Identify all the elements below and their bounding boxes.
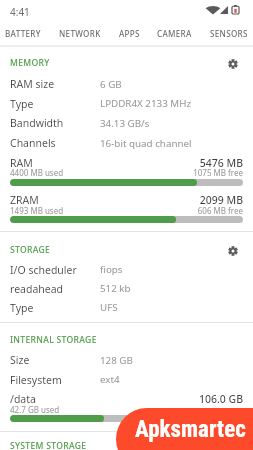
staticText: NETWORK xyxy=(59,28,101,39)
staticText: /data xyxy=(10,392,36,406)
button[interactable] xyxy=(0,350,253,369)
button[interactable]: SENSORS xyxy=(208,23,250,43)
staticText: readahead xyxy=(10,282,64,296)
staticText: 34.13 GB/s xyxy=(100,117,150,130)
staticText: Filesystem xyxy=(10,373,62,387)
button[interactable] xyxy=(0,113,253,132)
button[interactable] xyxy=(0,298,253,317)
staticText: 6 GB xyxy=(100,78,122,91)
staticText: Size xyxy=(10,353,30,367)
staticText: RAM xyxy=(10,156,33,170)
staticText: 1493 MB used xyxy=(10,205,64,216)
staticText: Apksmartec xyxy=(135,416,246,443)
button[interactable]: Settings xyxy=(224,55,242,73)
staticText: LPDDR4X 2133 MHz xyxy=(100,97,192,110)
button[interactable]: Apksmartec xyxy=(116,408,253,450)
staticText: APPS xyxy=(119,28,140,39)
staticText: Type xyxy=(10,301,34,315)
staticText: Channels xyxy=(10,136,56,150)
staticText: 16-bit quad channel xyxy=(100,137,192,150)
button[interactable]: APPS xyxy=(117,23,142,43)
staticText: MEMORY xyxy=(10,57,50,69)
staticText: BATTERY xyxy=(5,28,41,39)
staticText: SYSTEM STORAGE xyxy=(10,440,87,450)
button[interactable]: BATTERY xyxy=(3,23,43,43)
staticText: I/O scheduler xyxy=(10,263,77,277)
button[interactable]: CAMERA xyxy=(155,23,194,43)
staticText: 5476 MB xyxy=(199,156,243,170)
staticText: fiops xyxy=(100,263,123,276)
staticText: RAM size xyxy=(10,77,55,91)
button[interactable] xyxy=(0,74,253,93)
staticText: 106.0 GB xyxy=(198,392,243,406)
staticText: INTERNAL STORAGE xyxy=(10,334,97,346)
staticText: 2099 MB xyxy=(199,193,243,207)
staticText: ext4 xyxy=(100,373,120,386)
staticText: 128 GB xyxy=(100,354,133,367)
staticText: 606 MB free xyxy=(197,205,243,216)
staticText: 1075 MB free xyxy=(193,167,243,178)
staticText: 4400 MB used xyxy=(10,167,64,178)
button[interactable] xyxy=(0,94,253,113)
button[interactable] xyxy=(0,133,253,152)
staticText: SENSORS xyxy=(210,28,248,39)
staticText: Bandwidth xyxy=(10,116,64,130)
staticText: UFS xyxy=(100,301,118,314)
staticText: STORAGE xyxy=(10,244,51,256)
staticText: 4:41 xyxy=(10,5,30,19)
staticText: ZRAM xyxy=(10,193,39,207)
button[interactable] xyxy=(0,370,253,389)
staticText: 42.7 GB used xyxy=(10,404,60,415)
button[interactable]: NETWORK xyxy=(57,23,103,43)
button[interactable] xyxy=(0,279,253,298)
button[interactable] xyxy=(0,260,253,279)
staticText: Type xyxy=(10,97,34,111)
staticText: 512 kb xyxy=(100,282,131,295)
staticText: CAMERA xyxy=(157,28,192,39)
button[interactable]: Settings xyxy=(224,242,242,260)
